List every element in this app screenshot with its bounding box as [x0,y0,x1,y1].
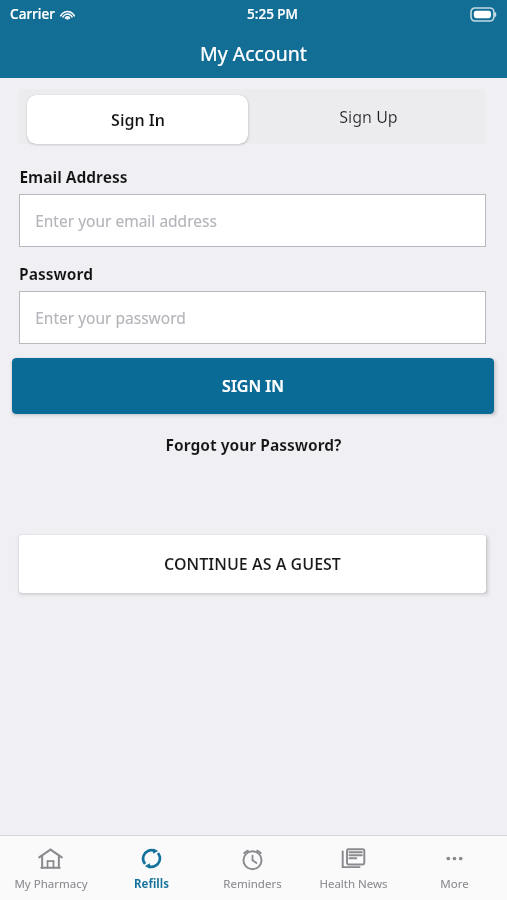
staticText: 5:25 PM [247,5,298,23]
staticText: Carrier [10,5,55,23]
button[interactable]: Forgot your Password? [0,434,507,455]
button[interactable]: Enter your password [19,291,486,344]
staticText: My Account [200,40,307,67]
staticText: CONTINUE AS A GUEST [164,553,341,575]
button[interactable]: Enter your email address [19,194,486,247]
staticText: Password [19,263,93,284]
button[interactable]: Reminders [202,836,303,900]
staticText: Refills [134,876,169,892]
button[interactable]: More [404,836,505,900]
staticText: Enter your password [35,307,186,328]
staticText: More [440,876,469,892]
staticText: Email Address [19,166,128,187]
staticText: Enter your email address [35,210,217,231]
button[interactable]: CONTINUE AS A GUEST [19,535,486,593]
staticText: My Pharmacy [14,876,88,892]
button[interactable]: SIGN IN [12,358,494,414]
staticText: Sign In [111,109,165,131]
staticText: SIGN IN [222,375,284,397]
staticText: Sign Up [339,106,398,128]
button[interactable]: Health News [303,836,404,900]
button[interactable]: Refills [101,836,202,900]
staticText: Forgot your Password? [165,434,342,455]
button[interactable]: Sign Up [252,89,485,144]
button[interactable]: Sign In [27,95,248,144]
staticText: Health News [319,876,388,892]
button[interactable]: My Pharmacy [0,836,101,900]
staticText: Reminders [223,876,282,892]
